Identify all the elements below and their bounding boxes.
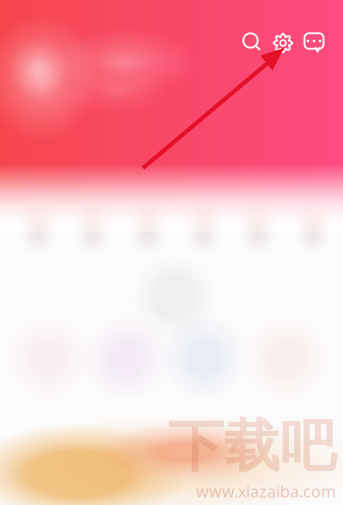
button[interactable]: Messages [297, 26, 331, 60]
button[interactable]: Search [235, 26, 269, 60]
staticText: www.xiazaiba.com [196, 481, 336, 502]
button[interactable]: Settings [266, 26, 300, 60]
staticText: 下载吧 [168, 412, 336, 481]
